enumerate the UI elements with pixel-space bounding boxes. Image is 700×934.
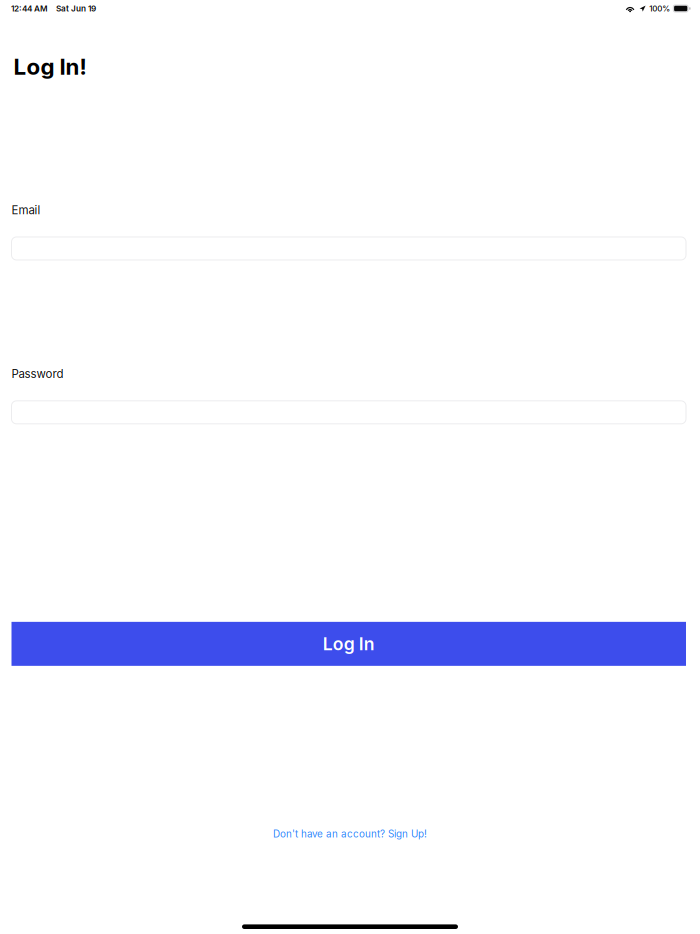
staticText: Don't have an account? Sign Up! [273,828,427,840]
staticText: Sat Jun 19 [56,3,96,13]
staticText: Email [11,203,40,217]
staticText: Log In [323,633,375,654]
staticText: 100% [649,4,670,13]
button[interactable]: Don't have an account? Sign Up! [273,828,427,840]
button[interactable]: Log In [11,622,686,666]
staticText: 12:44 AM [11,3,48,13]
staticText: Log In! [13,53,86,80]
staticText: Password [11,367,63,381]
